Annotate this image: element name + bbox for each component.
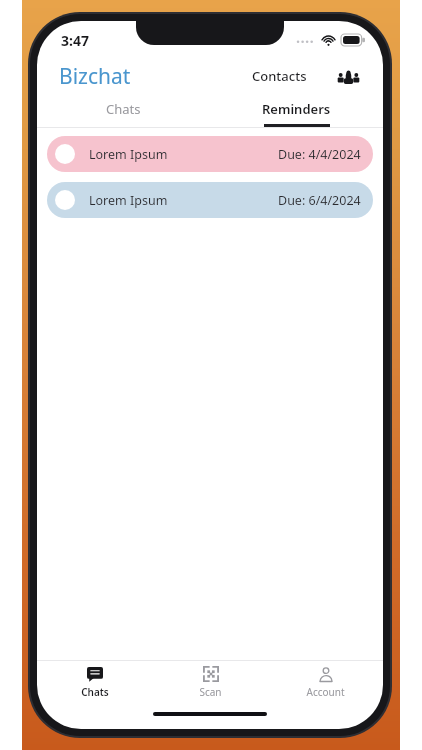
staticText: Lorem Ipsum xyxy=(89,146,168,163)
staticText: 3:47 xyxy=(61,31,89,50)
staticText: Scan xyxy=(199,685,222,699)
button[interactable]: Contacts group xyxy=(333,61,363,91)
button[interactable]: Chats xyxy=(37,97,210,127)
staticText: Reminders xyxy=(262,100,331,118)
staticText: Lorem Ipsum xyxy=(89,192,168,209)
staticText: Contacts xyxy=(252,67,307,85)
staticText: Chats xyxy=(106,100,141,118)
button[interactable]: Mark complete xyxy=(55,144,75,164)
button[interactable]: Reminders xyxy=(210,97,383,127)
button[interactable]: Account xyxy=(268,661,383,703)
button[interactable]: Scan xyxy=(153,661,268,703)
staticText: Account xyxy=(306,685,345,699)
button[interactable]: Mark complete xyxy=(47,136,373,172)
staticText: Due: 6/4/2024 xyxy=(278,192,361,209)
button[interactable]: Chats xyxy=(37,661,153,703)
staticText: Due: 4/4/2024 xyxy=(278,146,361,163)
staticText: Chats xyxy=(81,685,109,699)
button[interactable]: Mark complete xyxy=(55,190,75,210)
button[interactable]: Contacts xyxy=(248,63,311,89)
button[interactable]: Mark complete xyxy=(47,182,373,218)
staticText: Bizchat xyxy=(59,62,131,91)
